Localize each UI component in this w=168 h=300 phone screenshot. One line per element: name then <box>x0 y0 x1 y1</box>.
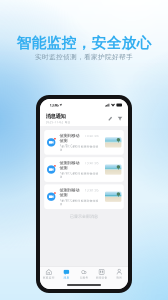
staticText: 消息通知 <box>45 113 65 120</box>
staticText: 13:41:05 <box>85 189 99 192</box>
staticText: Pan/Tilt Camera 检测到物体移动 <box>59 145 98 151</box>
staticText: 侦测到移动侦测 <box>59 188 79 197</box>
staticText: 13:46 <box>49 102 58 108</box>
staticText: 侦测到移动侦测 <box>59 133 79 143</box>
button[interactable]: 智能设备 <box>93 267 110 281</box>
staticText: 家庭监控 <box>43 276 55 279</box>
staticText: 13:41:05 <box>85 161 99 165</box>
button[interactable]: 消息 <box>58 267 75 281</box>
button[interactable]: 编辑 <box>108 116 113 121</box>
staticText: 我的 <box>116 276 122 279</box>
staticText: Pan/Tilt Camera 检测到物体移动 <box>59 199 98 206</box>
staticText: 消息 <box>63 276 69 279</box>
staticText: 云服务 <box>79 276 88 279</box>
button[interactable]: 侦测到移动侦测 <box>44 184 124 209</box>
button[interactable]: 家庭监控 <box>40 267 58 281</box>
staticText: Pan/Tilt Camera 检测到物体移动 <box>59 172 98 179</box>
button[interactable]: 云服务 <box>75 267 93 281</box>
button[interactable]: 我的 <box>110 267 128 281</box>
staticText: 13:41:05 <box>85 134 99 138</box>
button[interactable]: 侦测到移动侦测 <box>44 157 124 182</box>
staticText: 实时监控侦测，看家护院好帮手 <box>35 53 133 61</box>
staticText: 智能监控，安全放心 <box>16 34 151 52</box>
staticText: 已显示全部消息 <box>70 214 98 219</box>
staticText: 2025-11-02 周日 <box>45 120 70 124</box>
button[interactable]: 侦测到移动侦测 <box>44 130 124 155</box>
staticText: 侦测到移动侦测 <box>59 160 79 170</box>
staticText: 智能设备 <box>96 276 108 279</box>
button[interactable]: 筛选 <box>117 116 122 121</box>
